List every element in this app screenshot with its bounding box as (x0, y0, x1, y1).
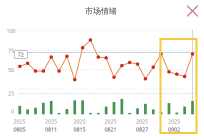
staticText: 75 (8, 47, 14, 54)
staticText: 2025 (136, 118, 148, 125)
staticText: 2025 (73, 118, 85, 125)
staticText: 50 (8, 66, 14, 74)
staticText: 0 (11, 108, 14, 115)
staticText: 0902 (168, 126, 180, 133)
staticText: 2025 (13, 118, 25, 125)
button[interactable]: Close (184, 2, 201, 19)
staticText: 市场情绪 (85, 6, 117, 16)
staticText: 0827 (136, 126, 148, 133)
staticText: 100 (6, 27, 15, 35)
staticText: 2025 (45, 118, 57, 125)
staticText: 0815 (73, 126, 85, 133)
staticText: 0805 (13, 126, 25, 133)
staticText: 2025 (104, 118, 116, 125)
staticText: 72 (18, 51, 24, 58)
staticText: 0811 (45, 126, 57, 133)
staticText: 2025 (168, 118, 180, 125)
staticText: 25 (8, 90, 14, 97)
staticText: 0821 (104, 126, 116, 133)
